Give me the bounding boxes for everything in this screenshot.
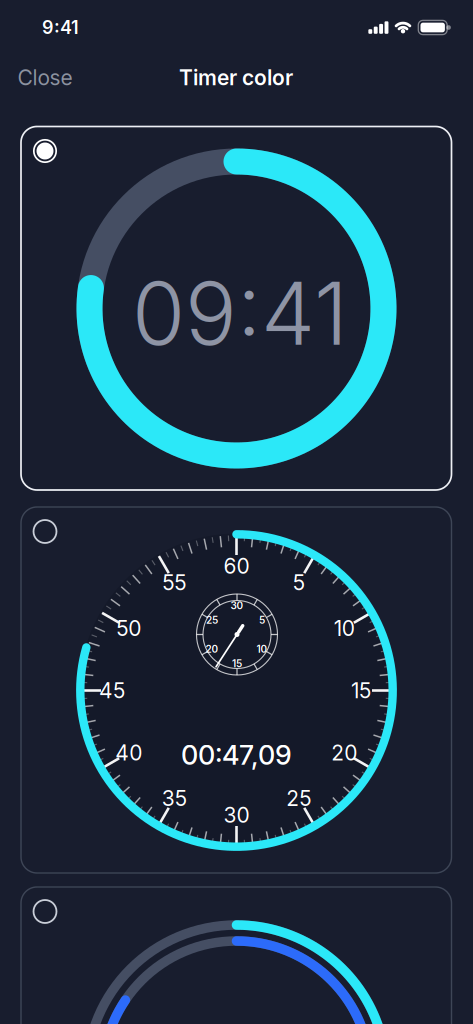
staticText: 5 (293, 570, 305, 595)
button[interactable]: Concentric rings timer color (21, 887, 451, 1024)
staticText: Timer color (179, 65, 293, 90)
staticText: 30 (223, 802, 249, 828)
button[interactable]: Stopwatch dial timer color (21, 507, 451, 873)
staticText: 20 (205, 643, 218, 655)
staticText: 60 (223, 553, 249, 579)
staticText: 5 (259, 614, 265, 626)
staticText: Close (17, 65, 72, 90)
staticText: 15 (232, 657, 242, 670)
staticText: 25 (286, 786, 311, 811)
staticText: 00:47,09 (181, 739, 292, 771)
staticText: 20 (331, 740, 357, 765)
staticText: 45 (99, 678, 125, 703)
button[interactable]: Cyan ring timer color (21, 126, 451, 490)
staticText: 10 (334, 615, 355, 641)
staticText: 50 (116, 615, 141, 641)
staticText: 40 (115, 740, 142, 765)
staticText: 35 (162, 786, 187, 811)
staticText: 30 (230, 599, 243, 612)
staticText: 09:41 (132, 261, 348, 366)
staticText: 55 (162, 570, 186, 595)
button[interactable]: Close (17, 65, 72, 90)
staticText: 25 (206, 614, 218, 626)
staticText: 15 (351, 678, 371, 703)
staticText: 10 (257, 643, 268, 655)
staticText: 9:41 (42, 17, 79, 38)
